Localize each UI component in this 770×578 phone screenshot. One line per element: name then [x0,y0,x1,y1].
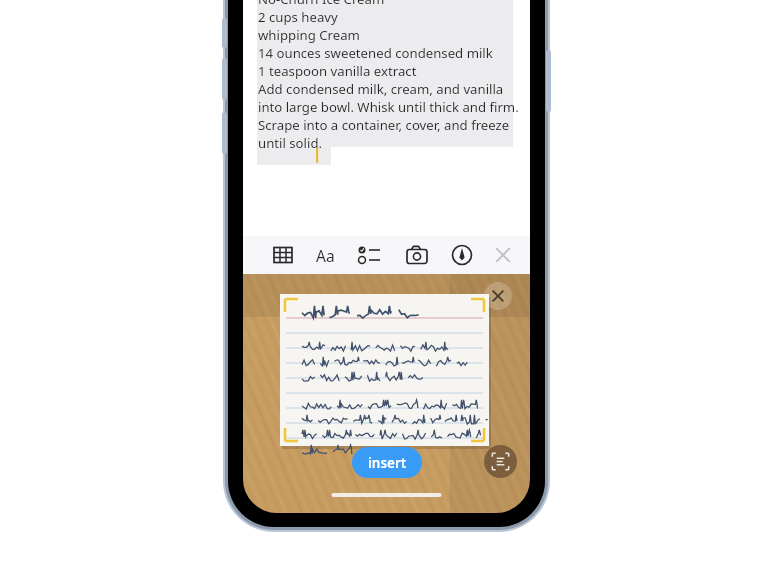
staticText: whipping Cream [258,26,360,44]
staticText: 1 teaspoon vanilla extract [258,62,417,80]
button[interactable]: Text format [308,240,342,270]
button[interactable]: Scan document [484,445,517,478]
button[interactable]: Remove photo [484,282,512,310]
button[interactable]: Markup [445,240,479,270]
button[interactable]: Table [266,240,300,270]
button[interactable]: Text format [308,240,342,270]
staticText: Scrape into a container, cover, and free… [258,116,510,134]
button[interactable]: Checklist [354,240,388,270]
staticText: 14 ounces sweetened condensed milk [258,44,493,62]
staticText: into large bowl. Whisk until thick and f… [258,98,519,116]
staticText: Add condensed milk, cream, and vanilla [258,80,504,98]
staticText: No-Churn Ice Cream [258,0,385,8]
button[interactable]: Close [486,240,520,270]
staticText: Aa [316,245,335,266]
staticText: until solid. [258,134,323,152]
staticText: insert [368,454,407,472]
button[interactable]: Camera [400,240,434,270]
staticText: 2 cups heavy [258,8,338,26]
button[interactable]: insert [352,447,422,478]
